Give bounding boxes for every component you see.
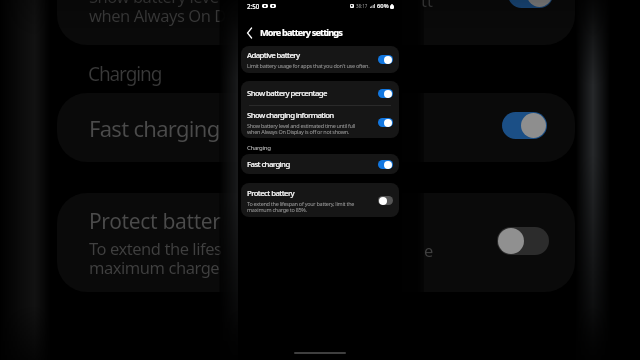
staticText: 2:50 [247, 2, 260, 10]
staticText: Show battery leve when Always On D [89, 0, 226, 27]
staticText: Fast charging [89, 113, 220, 143]
button[interactable]: Switch on [378, 55, 393, 64]
button[interactable]: Protect battery [241, 183, 399, 217]
staticText: More battery settings [260, 26, 343, 39]
button[interactable]: Switch on [378, 118, 393, 127]
button[interactable]: Navigate up [243, 26, 256, 39]
staticText: Protect battery [247, 188, 295, 199]
staticText: 38:17 [356, 3, 368, 9]
staticText: Show battery percentage [247, 88, 327, 99]
button[interactable]: Switch on [378, 160, 393, 169]
staticText: Show battery level and estimated time un… [247, 122, 355, 135]
button[interactable]: Switch on [378, 89, 393, 98]
button[interactable]: Show battery percentage [241, 81, 399, 105]
staticText: To extend the lifespan of your battery, … [247, 200, 355, 213]
staticText: tt [421, 0, 433, 11]
staticText: e [424, 239, 434, 261]
staticText: Fast charging [247, 159, 290, 170]
staticText: Charging [88, 61, 162, 87]
staticText: Charging [247, 143, 271, 151]
staticText: Show charging information [247, 110, 334, 121]
button[interactable]: Fast charging [241, 154, 399, 174]
button[interactable]: Switch off [378, 196, 393, 205]
button[interactable]: Show charging information [241, 106, 399, 138]
staticText: Protect batter [89, 207, 221, 236]
staticText: Adaptive battery [247, 50, 300, 61]
staticText: Limit battery usage for apps that you do… [247, 62, 370, 69]
staticText: 60% [377, 2, 389, 10]
button[interactable]: Adaptive battery [241, 46, 399, 73]
staticText: To extend the lifes maximum charge [89, 237, 222, 279]
